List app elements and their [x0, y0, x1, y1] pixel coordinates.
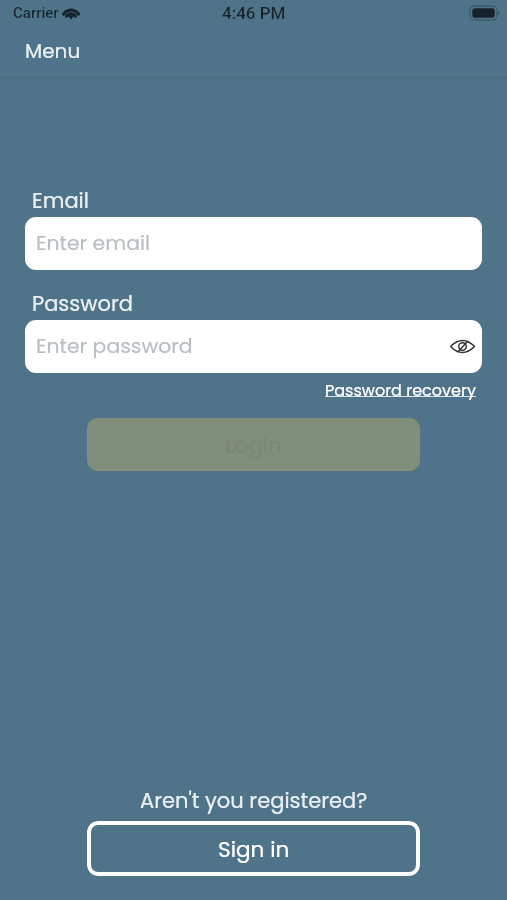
staticText: Login — [225, 430, 282, 460]
staticText: 4:46 PM — [222, 3, 286, 23]
button[interactable]: Enter password — [25, 320, 482, 373]
staticText: Enter password — [36, 332, 193, 361]
button[interactable]: Menu — [25, 37, 81, 65]
button[interactable]: Sign in — [87, 821, 420, 876]
staticText: Password — [32, 289, 133, 318]
staticText: Enter email — [36, 229, 151, 258]
button[interactable]: Login — [87, 418, 420, 471]
staticText: Aren't you registered? — [140, 786, 368, 815]
staticText: Sign in — [218, 834, 290, 864]
staticText: Email — [32, 186, 89, 215]
button[interactable]: Enter email — [25, 217, 482, 270]
button[interactable]: Password recovery — [325, 379, 476, 401]
staticText: Carrier — [13, 4, 59, 22]
button[interactable]: Show password — [449, 333, 476, 360]
